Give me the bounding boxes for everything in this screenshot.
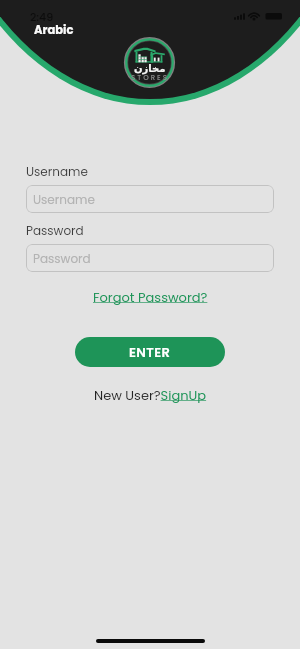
staticText: Password	[33, 250, 91, 267]
staticText: STORES	[131, 73, 169, 83]
staticText: مخازن	[134, 63, 166, 75]
button[interactable]: Username	[26, 185, 274, 213]
other: Status icons	[234, 11, 282, 21]
other: Makhazin Stores logo	[124, 37, 175, 88]
staticText: Username	[26, 163, 88, 180]
staticText: Password	[26, 222, 84, 239]
button[interactable]: Arabic	[34, 22, 74, 38]
staticText: 2:49	[30, 9, 54, 24]
staticText: ENTER	[129, 343, 171, 361]
staticText: Username	[33, 191, 95, 208]
button[interactable]: Forgot Password?	[93, 288, 208, 306]
staticText: Forgot Password?	[93, 288, 208, 306]
button[interactable]: ENTER	[75, 337, 225, 367]
button[interactable]: Password	[26, 244, 274, 272]
staticText: New User?SignUp	[94, 386, 207, 404]
button[interactable]: New User?SignUp	[94, 386, 207, 404]
staticText: Arabic	[34, 22, 74, 38]
